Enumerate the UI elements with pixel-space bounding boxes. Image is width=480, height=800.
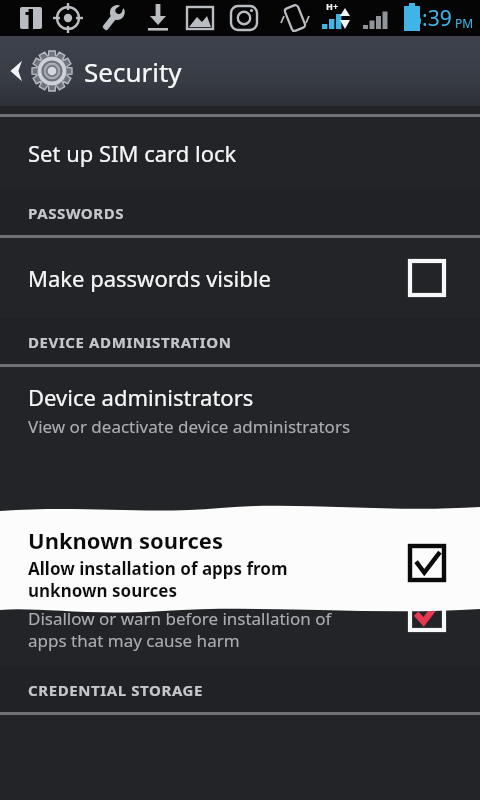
staticText: Security (84, 54, 182, 89)
staticText: Disallow or warn before installation of … (28, 607, 332, 652)
staticText: 6:39 (410, 4, 452, 33)
staticText: Device administrators (28, 382, 254, 412)
button[interactable]: Make passwords visible (404, 255, 450, 301)
staticText: PASSWORDS (28, 203, 125, 223)
button[interactable]: Unknown sources (404, 540, 450, 586)
staticText: PM (455, 15, 474, 31)
staticText: Verify apps (28, 574, 143, 604)
button[interactable]: Make passwords visible (0, 238, 480, 318)
button[interactable]: Unknown sources (0, 505, 480, 613)
button[interactable]: Verify apps (0, 560, 480, 666)
staticText: Unknown sources (28, 525, 224, 555)
staticText: H+ (326, 0, 339, 12)
button[interactable]: Set up SIM card lock (0, 117, 480, 189)
staticText: CREDENTIAL STORAGE (28, 680, 204, 700)
button[interactable]: Verify apps (404, 590, 450, 636)
staticText: Allow installation of apps from unknown … (28, 557, 288, 602)
staticText: Make passwords visible (28, 263, 271, 293)
button[interactable]: Device administrators (0, 367, 480, 452)
button[interactable]: Navigate up, Security (0, 36, 480, 106)
staticText: View or deactivate device administrators (28, 415, 351, 438)
staticText: Set up SIM card lock (28, 138, 237, 168)
staticText: DEVICE ADMINISTRATION (28, 332, 232, 352)
